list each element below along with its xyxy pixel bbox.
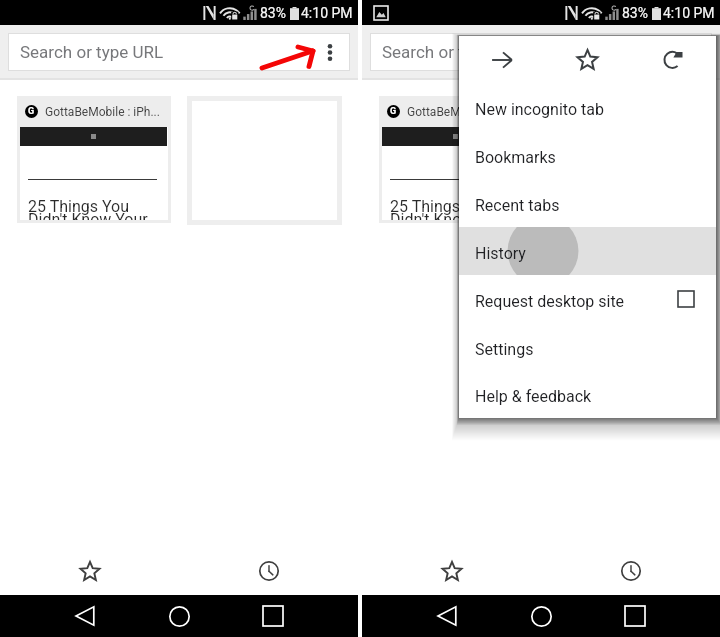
button[interactable]: Home: [494, 595, 588, 637]
button[interactable]: Home: [132, 595, 226, 637]
button[interactable]: [554, 101, 699, 220]
staticText: 83%: [622, 5, 648, 21]
button[interactable]: New incognito tab: [459, 83, 716, 131]
staticText: 25 Things You: [28, 197, 129, 216]
staticText: GottaBeMobile : iPh...: [45, 105, 160, 119]
staticText: History: [475, 244, 526, 263]
button[interactable]: History: [541, 547, 720, 595]
button[interactable]: Bookmarks: [459, 131, 716, 179]
button[interactable]: History: [179, 547, 358, 595]
button[interactable]: Help & feedback: [459, 371, 716, 418]
button[interactable]: Settings: [459, 323, 716, 371]
staticText: Settings: [475, 340, 534, 359]
staticText: Recent tabs: [475, 196, 560, 215]
other: Screenshot captured: [374, 6, 388, 20]
staticText: Search or type URL: [382, 42, 526, 62]
button[interactable]: Bookmarks: [362, 547, 541, 595]
button[interactable]: Recent tabs: [459, 179, 716, 227]
button[interactable]: G: [379, 96, 533, 223]
button[interactable]: Back: [400, 595, 494, 637]
button[interactable]: More options: [311, 34, 349, 70]
button[interactable]: Reload: [630, 36, 716, 83]
button[interactable]: G: [17, 96, 171, 223]
staticText: 25 Things You: [390, 197, 491, 216]
staticText: Didn't Know Your: [390, 210, 510, 220]
button[interactable]: Search or type URL: [371, 34, 711, 70]
staticText: GottaBeMobile : iPh...: [407, 105, 522, 119]
staticText: Search or type URL: [20, 42, 164, 62]
staticText: G: [28, 106, 35, 117]
button[interactable]: Recent apps: [588, 595, 682, 637]
button[interactable]: Search or type URL: [9, 34, 349, 70]
staticText: 4:10 PM: [301, 5, 353, 21]
button[interactable]: Bookmarks: [0, 547, 179, 595]
button[interactable]: History: [459, 227, 716, 275]
staticText: G: [390, 106, 397, 117]
button[interactable]: Request desktop site: [459, 275, 716, 323]
button[interactable]: More options: [673, 34, 711, 70]
staticText: Bookmarks: [475, 148, 556, 167]
staticText: 4:10 PM: [663, 5, 715, 21]
staticText: Didn't Know Your: [28, 210, 148, 220]
button[interactable]: Back: [38, 595, 132, 637]
button[interactable]: Forward: [459, 36, 544, 83]
button[interactable]: Bookmark this page: [544, 36, 630, 83]
staticText: Help & feedback: [475, 387, 592, 406]
button[interactable]: Recent apps: [226, 595, 320, 637]
staticText: 83%: [260, 5, 286, 21]
staticText: New incognito tab: [475, 100, 604, 119]
staticText: Request desktop site: [475, 292, 625, 311]
